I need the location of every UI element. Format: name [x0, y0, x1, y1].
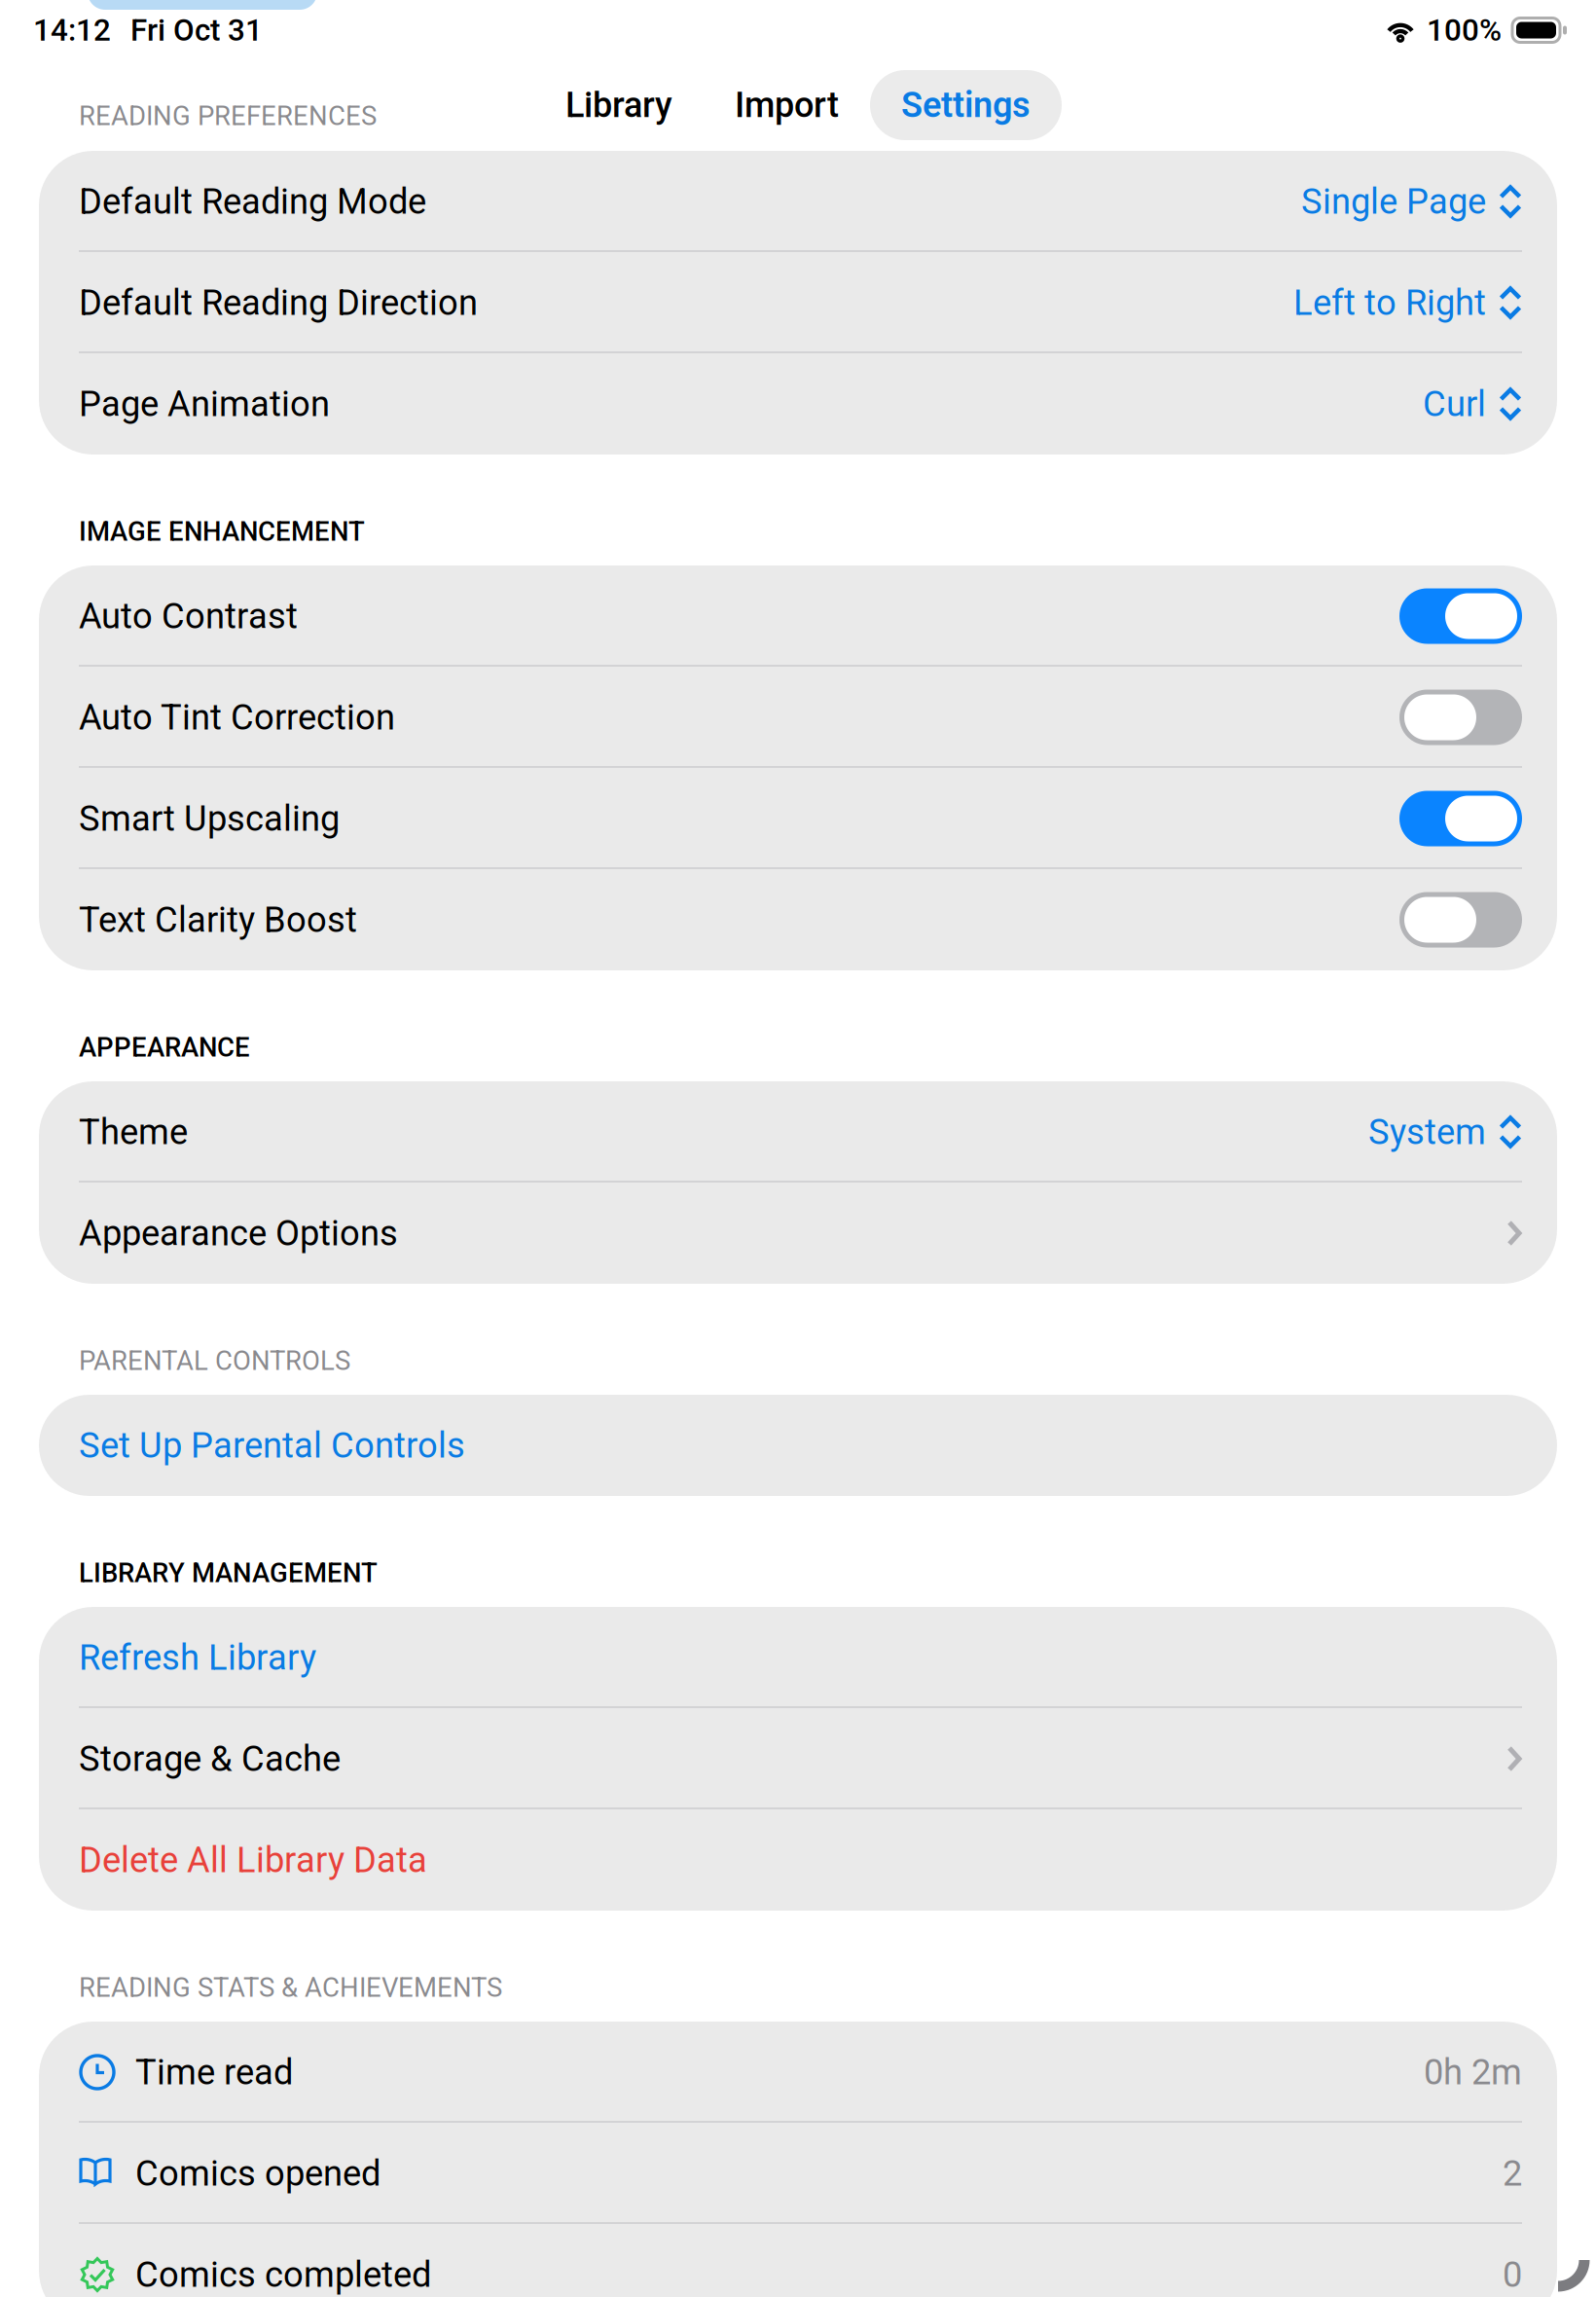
staticText: Delete All Library Data	[79, 1839, 427, 1881]
staticText: Theme	[79, 1111, 188, 1153]
button[interactable]: Settings	[870, 70, 1062, 140]
staticText: READING PREFERENCES	[79, 100, 377, 131]
button[interactable]: On	[1399, 791, 1522, 846]
button[interactable]: Import	[704, 70, 870, 140]
staticText: 14:12	[33, 12, 111, 48]
button[interactable]: Page Animation	[39, 353, 1557, 455]
staticText: Single Page	[1301, 181, 1486, 222]
staticText: 0h 2m	[1424, 2052, 1522, 2093]
staticText: Fri Oct 31	[130, 12, 263, 48]
button[interactable]: Delete All Library Data	[39, 1809, 1557, 1911]
staticText: Storage & Cache	[79, 1738, 341, 1779]
staticText: Import	[735, 85, 839, 126]
staticText: Left to Right	[1293, 282, 1486, 323]
staticText: 2	[1503, 2153, 1522, 2194]
staticText: Library	[565, 85, 672, 126]
staticText: Auto Tint Correction	[79, 697, 395, 738]
staticText: System	[1368, 1111, 1486, 1153]
staticText: Appearance Options	[79, 1213, 398, 1254]
staticText: PARENTAL CONTROLS	[79, 1345, 350, 1376]
staticText: Time read	[135, 2052, 293, 2093]
staticText: Comics completed	[135, 2254, 431, 2295]
staticText: Settings	[901, 85, 1031, 126]
button[interactable]: Default Reading Direction	[39, 252, 1557, 353]
staticText: IMAGE ENHANCEMENT	[79, 516, 365, 547]
staticText: Smart Upscaling	[79, 798, 340, 839]
button[interactable]: Storage & Cache	[39, 1708, 1557, 1809]
staticText: LIBRARY MANAGEMENT	[79, 1557, 378, 1589]
button[interactable]: Off	[1399, 892, 1522, 948]
staticText: Auto Contrast	[79, 595, 298, 637]
staticText: Comics opened	[135, 2153, 381, 2194]
staticText: APPEARANCE	[79, 1032, 250, 1063]
button[interactable]: Library	[534, 70, 704, 140]
button[interactable]: On	[1399, 588, 1522, 644]
staticText: 100%	[1427, 12, 1502, 48]
staticText: Default Reading Direction	[79, 282, 478, 323]
staticText: READING STATS & ACHIEVEMENTS	[79, 1972, 502, 2003]
staticText: Refresh Library	[79, 1637, 316, 1678]
button[interactable]: Theme	[39, 1081, 1557, 1183]
staticText: Curl	[1423, 383, 1486, 425]
button[interactable]: Off	[1399, 690, 1522, 745]
staticText: Text Clarity Boost	[79, 899, 357, 941]
staticText: Page Animation	[79, 383, 330, 425]
staticText: 0	[1503, 2254, 1522, 2295]
button[interactable]: Set Up Parental Controls	[39, 1395, 1557, 1496]
button[interactable]: Refresh Library	[39, 1607, 1557, 1708]
button[interactable]: Appearance Options	[39, 1183, 1557, 1284]
staticText: Default Reading Mode	[79, 181, 426, 222]
button[interactable]: Default Reading Mode	[39, 151, 1557, 252]
staticText: Set Up Parental Controls	[79, 1425, 465, 1466]
